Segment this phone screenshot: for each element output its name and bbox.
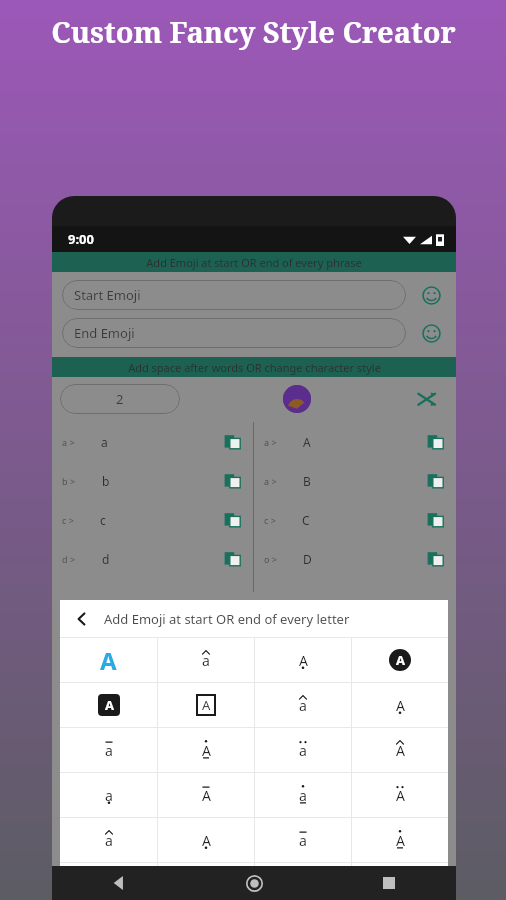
button[interactable]: A (158, 728, 254, 772)
button[interactable]: A (352, 638, 448, 682)
button[interactable]: o > (254, 539, 456, 578)
button[interactable]: A (352, 728, 448, 772)
button[interactable]: App logo (283, 385, 311, 413)
staticText: a (299, 741, 307, 760)
other: Copy (426, 471, 446, 491)
staticText: A (303, 434, 311, 450)
button[interactable]: a (255, 773, 351, 817)
staticText: a (105, 786, 113, 805)
staticText: a > (264, 475, 277, 487)
other: Copy (223, 432, 243, 452)
button[interactable]: Recents (376, 870, 402, 896)
staticText: A (100, 644, 117, 677)
staticText: b (102, 473, 110, 489)
button[interactable]: a (60, 818, 157, 862)
button[interactable]: End Emoji (62, 318, 406, 348)
staticText: A (396, 696, 405, 715)
other: Copy (426, 549, 446, 569)
button[interactable]: a (60, 728, 157, 772)
staticText: a (101, 434, 108, 450)
staticText: a > (264, 436, 277, 448)
button[interactable]: Start Emoji (62, 280, 406, 310)
button[interactable]: A (158, 818, 254, 862)
button[interactable]: a (255, 818, 351, 862)
staticText: 9:00 (68, 230, 94, 248)
staticText: A (105, 696, 114, 714)
staticText: 2 (116, 390, 124, 408)
staticText: c > (264, 514, 276, 526)
other: Copy (426, 510, 446, 530)
staticText: B (303, 473, 311, 489)
staticText: a (299, 786, 307, 805)
staticText: A (396, 741, 405, 760)
staticText: a (299, 831, 307, 850)
other: Copy (223, 471, 243, 491)
staticText: a (105, 741, 113, 760)
button[interactable]: Pick emoji (416, 318, 446, 348)
staticText: A (396, 786, 405, 805)
other: Back (72, 609, 92, 629)
other: Copy (426, 432, 446, 452)
button[interactable]: d > (52, 539, 253, 578)
staticText: Add space after words OR change characte… (128, 360, 381, 375)
button[interactable]: A (352, 818, 448, 862)
button[interactable]: 2 (60, 384, 180, 414)
staticText: Custom Fancy Style Creator (51, 12, 456, 51)
staticText: A (202, 741, 211, 760)
staticText: A (202, 696, 211, 714)
staticText: a (202, 651, 210, 670)
staticText: a (299, 696, 307, 715)
button[interactable]: Pick emoji (416, 280, 446, 310)
staticText: d (102, 551, 110, 567)
staticText: a (105, 831, 113, 850)
staticText: c (100, 512, 106, 528)
staticText: b > (62, 475, 76, 487)
staticText: Start Emoji (74, 286, 141, 304)
button[interactable]: a > (254, 461, 456, 500)
staticText: o > (264, 553, 277, 565)
staticText: Add Emoji at start OR end of every phras… (146, 255, 362, 270)
button[interactable]: a (255, 728, 351, 772)
staticText: A (396, 651, 405, 669)
staticText: A (202, 831, 211, 850)
button[interactable]: A (158, 683, 254, 727)
staticText: A (299, 651, 308, 670)
button[interactable]: Back (60, 600, 448, 637)
staticText: c > (62, 514, 74, 526)
button[interactable]: A (255, 638, 351, 682)
button[interactable]: a (60, 773, 157, 817)
button[interactable]: A (60, 638, 157, 682)
button[interactable]: a (158, 638, 254, 682)
other: Copy (223, 510, 243, 530)
staticText: a > (62, 436, 75, 448)
staticText: D (303, 551, 312, 567)
button[interactable]: A (158, 773, 254, 817)
staticText: d > (62, 553, 76, 565)
button[interactable]: a > (254, 422, 456, 461)
button[interactable]: Shuffle (414, 384, 442, 414)
staticText: Add Emoji at start OR end of every lette… (104, 610, 350, 628)
staticText: A (396, 831, 405, 850)
button[interactable]: A (352, 773, 448, 817)
staticText: End Emoji (74, 324, 135, 342)
button[interactable]: b > (52, 461, 253, 500)
staticText: A (202, 786, 211, 805)
staticText: C (302, 512, 310, 528)
button[interactable]: Home (241, 870, 267, 896)
button[interactable]: c > (254, 500, 456, 539)
button[interactable]: a > (52, 422, 253, 461)
other: Copy (223, 549, 243, 569)
button[interactable]: A (352, 683, 448, 727)
button[interactable]: Back (106, 870, 132, 896)
button[interactable]: a (255, 683, 351, 727)
button[interactable]: c > (52, 500, 253, 539)
button[interactable]: A (60, 683, 157, 727)
